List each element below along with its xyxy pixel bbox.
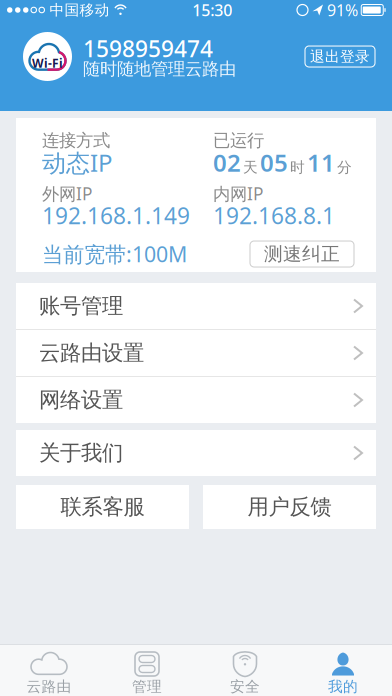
staticText: 192.168.1.149 <box>42 200 190 230</box>
staticText: 192.168.8.1 <box>213 200 335 230</box>
button[interactable]: 用户反馈 <box>203 485 376 529</box>
staticText: 15:30 <box>192 0 232 21</box>
staticText: 连接方式 <box>42 130 110 151</box>
button[interactable]: 云路由 <box>0 645 98 696</box>
staticText: 我的 <box>328 677 358 695</box>
staticText: 联系客服 <box>60 494 144 520</box>
staticText: 关于我们 <box>39 440 123 466</box>
staticText: 动态IP <box>42 147 113 178</box>
staticText: 11 <box>307 147 335 178</box>
staticText: 分 <box>337 158 352 176</box>
staticText: 05 <box>260 147 288 178</box>
staticText: 随时随地管理云路由 <box>83 58 236 80</box>
button[interactable]: 联系客服 <box>16 485 189 529</box>
button[interactable]: 我的 <box>294 645 392 696</box>
staticText: 测速纠正 <box>264 242 340 265</box>
button[interactable]: 网络设置 <box>16 377 376 423</box>
staticText: 云路由 <box>26 677 71 695</box>
staticText: 账号管理 <box>39 293 123 319</box>
staticText: 已运行 <box>213 130 264 151</box>
staticText: 外网IP <box>42 182 92 205</box>
button[interactable]: 测速纠正 <box>250 241 354 267</box>
staticText: 云路由设置 <box>39 340 144 366</box>
button[interactable]: 管理 <box>98 645 196 696</box>
staticText: Wi-Fi <box>32 55 63 71</box>
staticText: 1598959474 <box>83 33 213 63</box>
staticText: 退出登录 <box>310 47 370 65</box>
staticText: 内网IP <box>213 182 263 205</box>
staticText: 管理 <box>132 677 162 695</box>
staticText: 当前宽带:100M <box>42 240 187 268</box>
button[interactable]: 账号管理 <box>16 283 376 329</box>
staticText: 网络设置 <box>39 387 123 413</box>
staticText: 02 <box>213 147 241 178</box>
staticText: 91% <box>327 0 358 21</box>
staticText: 天 <box>243 158 258 176</box>
staticText: 时 <box>290 158 305 176</box>
staticText: 用户反馈 <box>247 494 331 520</box>
button[interactable]: 安全 <box>196 645 294 696</box>
staticText: 安全 <box>230 677 260 695</box>
staticText: 中国移动 <box>49 1 109 19</box>
button[interactable]: 关于我们 <box>16 430 376 476</box>
button[interactable]: 退出登录 <box>305 46 375 67</box>
button[interactable]: 云路由设置 <box>16 330 376 376</box>
